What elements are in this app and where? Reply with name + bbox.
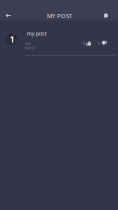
staticText: Talent [25,46,34,50]
staticText: task [25,42,31,46]
button[interactable]: Dislike [98,39,110,48]
staticText: 0 [83,41,85,46]
staticText: my post [27,30,47,37]
button[interactable]: Back [0,7,17,25]
button[interactable] [0,21,118,55]
staticText: 0 [98,41,100,46]
staticText: MY POST [47,12,72,20]
button[interactable]: Like [83,39,95,48]
button[interactable]: Home [97,6,115,24]
